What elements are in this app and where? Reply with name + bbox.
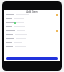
button[interactable] — [6, 13, 58, 17]
button[interactable] — [6, 21, 58, 25]
button[interactable] — [6, 57, 58, 60]
button[interactable] — [6, 45, 58, 49]
button[interactable]: Add Item — [4, 10, 60, 13]
button[interactable] — [6, 37, 58, 41]
button[interactable] — [6, 33, 58, 37]
button[interactable] — [6, 29, 58, 33]
button[interactable] — [6, 41, 58, 45]
button[interactable] — [6, 17, 58, 21]
staticText: Add Item — [26, 10, 38, 13]
button[interactable] — [6, 25, 58, 29]
